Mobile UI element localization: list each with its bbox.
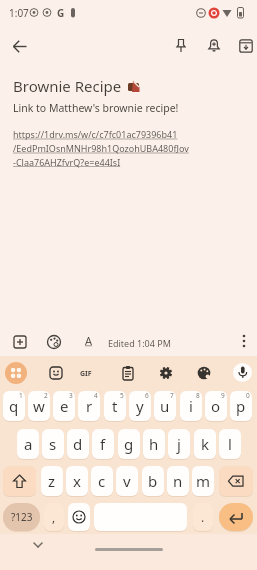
button[interactable]: b <box>142 466 164 496</box>
button[interactable]: y <box>129 391 151 421</box>
staticText: GIF <box>80 369 92 379</box>
staticText: q <box>9 396 19 416</box>
staticText: s <box>49 434 57 454</box>
button[interactable]: g <box>118 429 140 459</box>
staticText: z <box>48 471 56 491</box>
button[interactable]: A <box>80 331 98 349</box>
staticText: o <box>211 396 221 416</box>
staticText: Edited 1:04 PM <box>108 337 171 349</box>
button[interactable] <box>5 362 27 384</box>
staticText: 5 <box>120 391 124 400</box>
button[interactable]: m <box>192 466 214 496</box>
button[interactable]: https://1drv.ms/w/c/c7fc01ac79396b41 /Ee… <box>13 128 189 168</box>
button[interactable] <box>234 331 254 351</box>
staticText: f <box>100 434 106 454</box>
button[interactable]: r <box>78 391 100 421</box>
button[interactable]: c <box>91 466 113 496</box>
staticText: 1:07 <box>9 6 29 20</box>
button[interactable] <box>219 466 253 496</box>
button[interactable] <box>45 333 63 351</box>
button[interactable] <box>157 364 175 382</box>
button[interactable]: w <box>28 391 50 421</box>
staticText: v <box>123 471 131 491</box>
button[interactable]: p <box>230 391 252 421</box>
button[interactable] <box>68 503 90 531</box>
button[interactable] <box>8 34 33 59</box>
button[interactable] <box>219 503 253 531</box>
button[interactable] <box>202 34 226 58</box>
button[interactable] <box>3 466 36 496</box>
staticText: , <box>52 509 56 525</box>
button[interactable] <box>234 34 257 58</box>
button[interactable]: x <box>66 466 88 496</box>
staticText: m <box>196 471 211 491</box>
staticText: 3 <box>69 391 73 400</box>
button[interactable]: z <box>41 466 63 496</box>
button[interactable]: s <box>42 429 64 459</box>
staticText: l <box>228 434 232 454</box>
staticText: a <box>24 434 33 454</box>
button[interactable]: . <box>193 503 213 531</box>
button[interactable]: o <box>205 391 227 421</box>
button[interactable]: , <box>44 503 64 531</box>
button[interactable] <box>233 363 252 382</box>
staticText: i <box>189 396 193 416</box>
staticText: k <box>201 434 210 454</box>
button[interactable]: v <box>116 466 138 496</box>
staticText: t <box>112 396 118 416</box>
staticText: A <box>85 333 93 348</box>
button[interactable]: e <box>53 391 75 421</box>
staticText: y <box>136 396 144 416</box>
staticText: n <box>173 471 183 491</box>
button[interactable]: n <box>167 466 189 496</box>
staticText: Brownie Recipe <box>13 76 122 96</box>
button[interactable] <box>195 364 213 382</box>
button[interactable]: f <box>92 429 114 459</box>
button[interactable] <box>169 34 193 58</box>
staticText: 8 <box>196 391 200 400</box>
staticText: G <box>57 6 65 20</box>
staticText: c <box>98 471 106 491</box>
staticText: 6 <box>145 391 149 400</box>
button[interactable] <box>119 364 137 382</box>
button[interactable]: i <box>180 391 202 421</box>
staticText: 9 <box>221 391 225 400</box>
staticText: w <box>33 396 45 416</box>
staticText: 4 <box>94 391 98 400</box>
staticText: b <box>148 471 158 491</box>
staticText: d <box>73 434 83 454</box>
button[interactable]: q <box>3 391 25 421</box>
button[interactable]: a <box>17 429 39 459</box>
staticText: r <box>86 396 93 416</box>
staticText: u <box>160 396 170 416</box>
staticText: x <box>73 471 81 491</box>
button[interactable]: l <box>219 429 241 459</box>
staticText: 2 <box>44 391 48 400</box>
button[interactable]: d <box>67 429 89 459</box>
staticText: g <box>124 434 134 454</box>
staticText: h <box>149 434 159 454</box>
staticText: 1 <box>19 391 23 400</box>
button[interactable] <box>11 333 29 351</box>
staticText: j <box>177 434 181 454</box>
staticText: p <box>236 396 246 416</box>
staticText: 0 <box>246 391 250 400</box>
button[interactable] <box>94 503 187 531</box>
staticText: . <box>201 509 205 525</box>
button[interactable]: u <box>154 391 176 421</box>
button[interactable]: GIF <box>76 364 96 384</box>
staticText: ?123 <box>11 510 33 524</box>
staticText: Link to Matthew's brownie recipe! <box>13 101 179 115</box>
staticText: 7 <box>170 391 174 400</box>
button[interactable]: t <box>104 391 126 421</box>
staticText: e <box>60 396 69 416</box>
button[interactable]: h <box>143 429 165 459</box>
button[interactable] <box>47 364 65 382</box>
button[interactable]: j <box>168 429 190 459</box>
button[interactable]: k <box>194 429 216 459</box>
button[interactable]: ?123 <box>3 503 40 531</box>
